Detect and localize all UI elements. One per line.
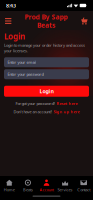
button[interactable]: Reset here <box>57 101 78 106</box>
button[interactable]: Sign up here <box>54 109 80 114</box>
button[interactable]: Beats <box>19 179 37 192</box>
button[interactable]: Enter your password <box>4 69 89 79</box>
staticText: Beats <box>23 187 33 192</box>
staticText: 8:43 <box>6 2 16 9</box>
staticText: Login <box>4 31 25 42</box>
button[interactable]: Menu <box>2 14 14 28</box>
staticText: Sign up here <box>54 109 80 114</box>
staticText: Enter your password <box>7 72 43 77</box>
staticText: Login to manage your order history and a… <box>4 43 85 53</box>
button[interactable]: Enter your email <box>4 57 89 67</box>
button[interactable]: Home <box>0 179 19 192</box>
staticText: Beats <box>37 21 55 30</box>
staticText: Don't have an account? <box>13 109 52 114</box>
button[interactable]: Services <box>56 179 74 192</box>
staticText: Account <box>39 187 53 192</box>
button[interactable]: Account <box>37 179 56 192</box>
staticText: Contact <box>77 187 90 192</box>
staticText: Services <box>58 187 73 192</box>
staticText: Reset here <box>57 101 78 106</box>
staticText: Forgot your password? <box>15 101 55 106</box>
button[interactable]: Cart <box>78 14 91 28</box>
staticText: Enter your email <box>7 60 36 65</box>
staticText: Login <box>39 88 53 95</box>
button[interactable]: Login <box>4 86 89 97</box>
button[interactable]: Contact <box>74 179 93 192</box>
staticText: Prod By Sapp <box>25 12 68 21</box>
staticText: Home <box>4 187 15 192</box>
